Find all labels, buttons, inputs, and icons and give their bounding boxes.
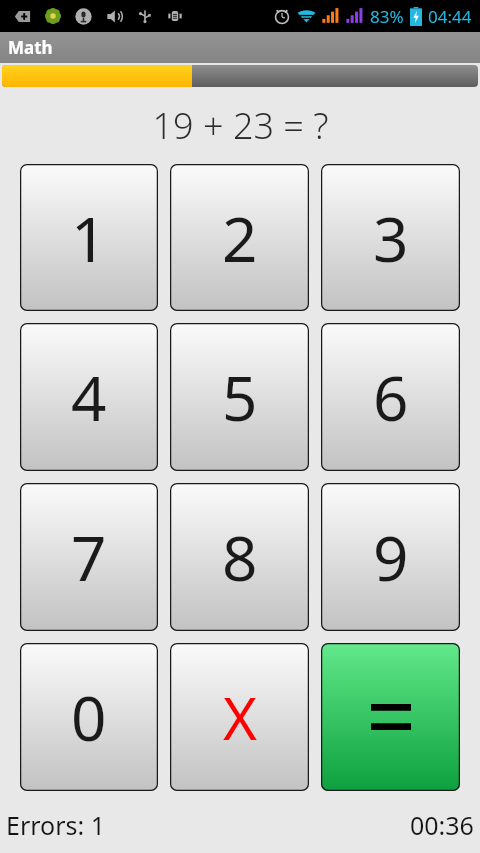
staticText: Math bbox=[8, 36, 53, 59]
staticText: 00:36 bbox=[410, 808, 474, 842]
staticText: 04:44 bbox=[428, 5, 472, 28]
button[interactable]: Digit 4 bbox=[20, 323, 158, 471]
staticText: 6 bbox=[373, 355, 409, 439]
button[interactable]: Digit 8 bbox=[170, 483, 309, 631]
staticText: X bbox=[223, 678, 257, 757]
button[interactable]: Digit 2 bbox=[170, 164, 309, 311]
staticText: 8 bbox=[222, 515, 258, 599]
staticText: Errors: 1 bbox=[6, 808, 105, 842]
staticText: 3 bbox=[373, 196, 409, 280]
staticText: 7 bbox=[71, 515, 107, 599]
button[interactable]: Equals bbox=[321, 643, 460, 791]
button[interactable]: Digit 3 bbox=[321, 164, 460, 311]
staticText: 9 bbox=[373, 515, 409, 599]
staticText: 83% bbox=[370, 5, 404, 28]
staticText: 4 bbox=[71, 355, 107, 439]
button[interactable]: Digit 5 bbox=[170, 323, 309, 471]
staticText: 0 bbox=[71, 675, 107, 759]
staticText: 1 bbox=[71, 196, 107, 280]
staticText: 19 + 23 = ? bbox=[152, 101, 329, 150]
button[interactable]: Digit 1 bbox=[20, 164, 158, 311]
button[interactable]: Clear bbox=[170, 643, 309, 791]
button[interactable]: Digit 7 bbox=[20, 483, 158, 631]
button[interactable]: Digit 0 bbox=[20, 643, 158, 791]
staticText: 5 bbox=[222, 355, 258, 439]
button[interactable]: Digit 9 bbox=[321, 483, 460, 631]
button[interactable]: Digit 6 bbox=[321, 323, 460, 471]
staticText: 2 bbox=[222, 196, 258, 280]
